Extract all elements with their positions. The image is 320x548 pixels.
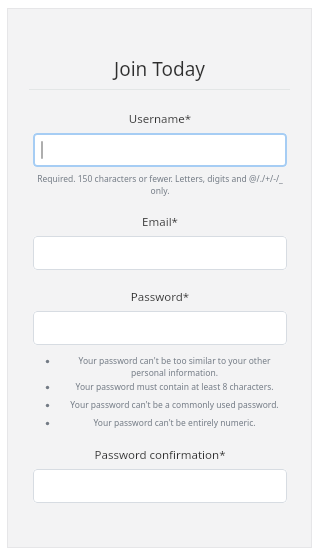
staticText: Your password can't be a commonly used p…	[62, 399, 287, 411]
staticText: Your password can't be too similar to yo…	[62, 355, 287, 379]
staticText: Join Today	[7, 56, 312, 82]
button[interactable]: Username	[33, 133, 287, 167]
staticText: Password confirmation*	[33, 447, 287, 463]
staticText: Your password must contain at least 8 ch…	[62, 381, 287, 393]
staticText: Password*	[33, 289, 287, 305]
button[interactable]: Password confirmation	[33, 469, 287, 503]
staticText: Email*	[33, 214, 287, 230]
staticText: Username*	[33, 111, 287, 127]
button[interactable]: Password	[33, 311, 287, 345]
staticText: Your password can't be entirely numeric.	[62, 417, 287, 429]
staticText: Required. 150 characters or fewer. Lette…	[33, 173, 287, 197]
button[interactable]: Email	[33, 236, 287, 270]
